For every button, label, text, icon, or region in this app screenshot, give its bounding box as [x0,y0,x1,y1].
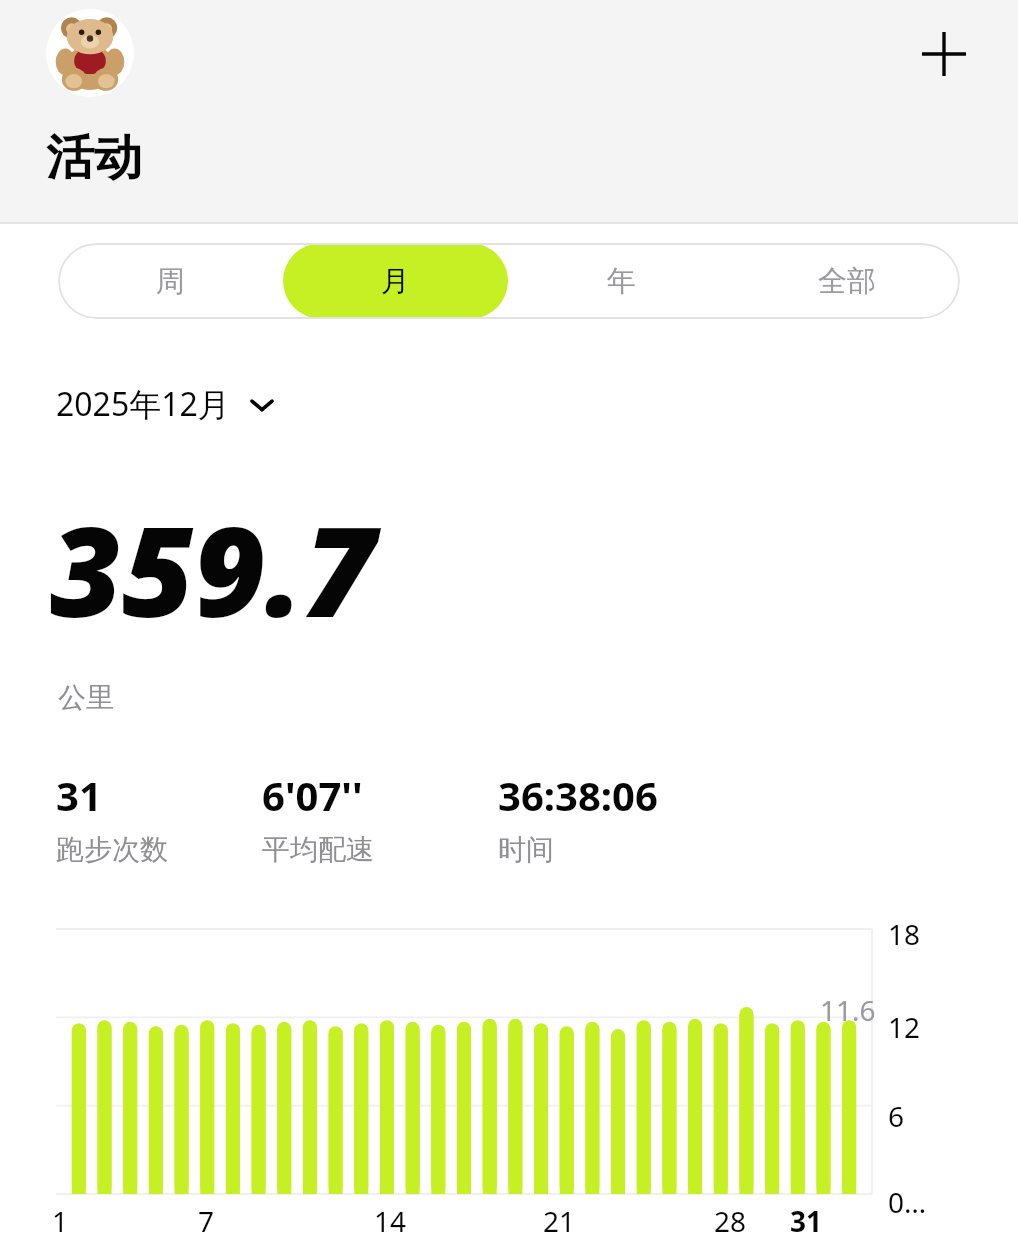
staticText: 11.6 [820,991,876,1029]
staticText: 时间 [498,832,554,867]
staticText: 21 [543,1202,576,1240]
staticText: 2025年12月 [56,382,230,426]
staticText: 平均配速 [262,832,374,867]
staticText: 18 [888,915,921,953]
staticText: 跑步次数 [56,832,168,867]
button[interactable]: 2025年12月 [56,381,276,427]
staticText: 31 [56,768,102,822]
button[interactable]: Profile [46,9,134,97]
staticText: 周 [156,263,185,300]
staticText: 7 [198,1202,215,1240]
button[interactable]: 年 [508,243,734,319]
staticText: 6'07'' [262,768,363,822]
button[interactable]: 月 [283,243,508,319]
staticText: 0… [888,1183,927,1221]
staticText: 6 [888,1097,905,1135]
staticText: 年 [607,263,636,300]
staticText: 36:38:06 [498,768,658,822]
button[interactable]: 周 [58,243,283,319]
staticText: 全部 [818,263,876,300]
staticText: 月 [381,263,410,300]
staticText: 活动 [46,128,142,188]
staticText: 1 [52,1202,69,1240]
button[interactable]: Add activity [898,8,990,100]
staticText: 14 [374,1202,407,1240]
button[interactable]: 全部 [734,243,960,319]
staticText: 12 [888,1008,921,1046]
staticText: 公里 [58,680,114,715]
staticText: 28 [714,1202,747,1240]
staticText: 31 [790,1202,823,1240]
staticText: 359.7 [50,484,376,653]
